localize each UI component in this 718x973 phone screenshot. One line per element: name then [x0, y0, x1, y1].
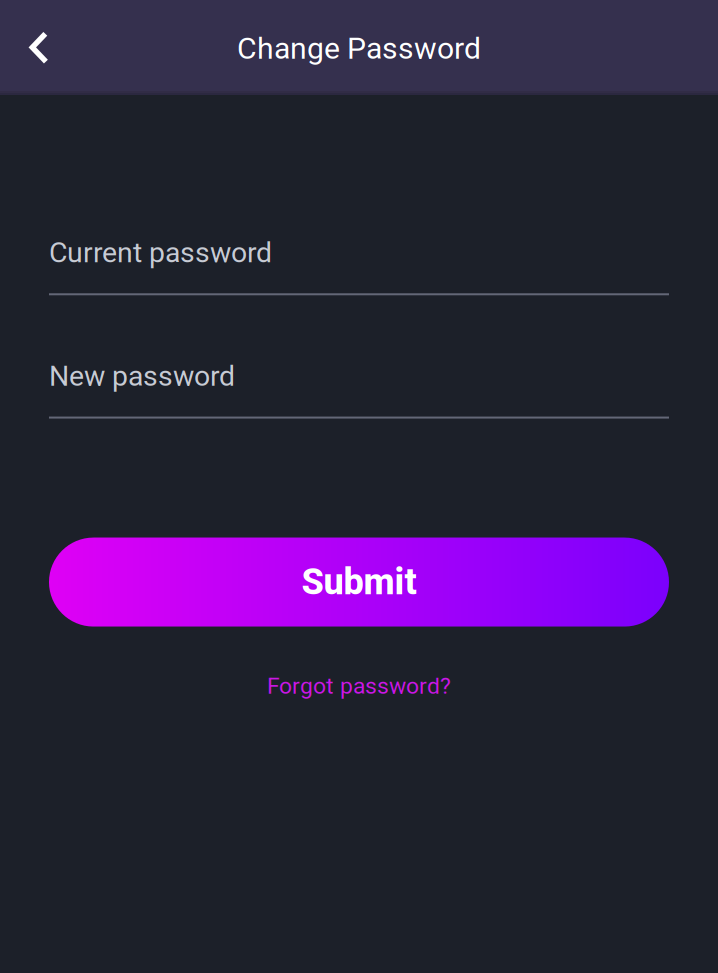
button[interactable]: Forgot password?: [49, 673, 669, 699]
button[interactable]: Submit: [49, 538, 669, 627]
staticText: Change Password: [237, 31, 481, 66]
button[interactable]: Current password: [49, 236, 669, 295]
button[interactable]: New password: [49, 359, 669, 419]
staticText: Submit: [301, 561, 416, 603]
button[interactable]: Back: [0, 5, 69, 86]
staticText: Forgot password?: [267, 673, 451, 699]
staticText: Current password: [49, 236, 272, 269]
staticText: New password: [49, 359, 235, 393]
